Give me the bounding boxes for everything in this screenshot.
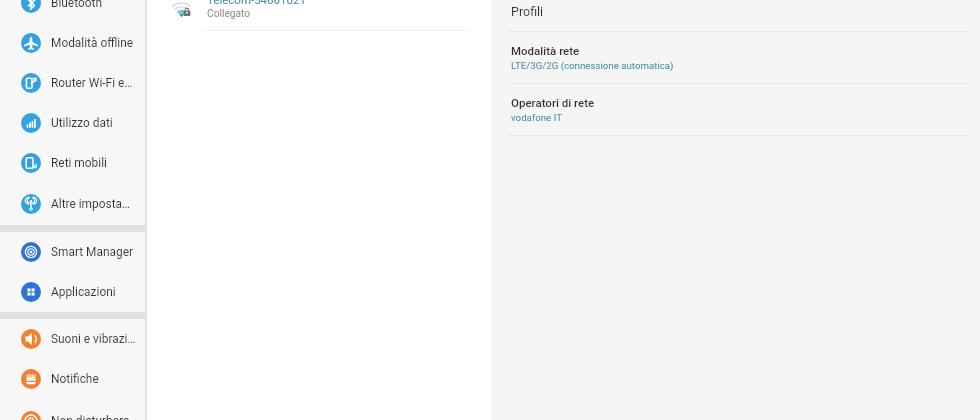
staticText: Profili (511, 4, 544, 19)
staticText: Notifiche (51, 372, 99, 386)
other: Wi-Fi secured network (174, 2, 191, 19)
button[interactable]: Altre imposta… (0, 184, 147, 224)
button[interactable]: Modalità rete (491, 32, 980, 83)
staticText: Applicazioni (51, 285, 116, 299)
button[interactable]: Reti mobili (0, 143, 147, 183)
button[interactable]: Operatori di rete (491, 84, 980, 135)
staticText: LTE/3G/2G (connessione automatica) (511, 60, 674, 71)
staticText: Operatori di rete (511, 96, 595, 109)
button[interactable]: Non disturbare (0, 401, 147, 420)
button[interactable]: Smart Manager (0, 232, 147, 272)
button[interactable]: Wi-Fi secured network (147, 0, 491, 19)
staticText: vodafone IT (511, 112, 562, 123)
staticText: Non disturbare (51, 414, 130, 420)
button[interactable]: Modalità offline (0, 23, 147, 63)
button[interactable]: Profili (491, 0, 980, 31)
staticText: Reti mobili (51, 156, 107, 170)
button[interactable]: Applicazioni (0, 272, 147, 312)
button[interactable]: Bluetooth (0, 0, 147, 23)
staticText: Router Wi-Fi e… (51, 76, 133, 90)
staticText: Suoni e vibrazi… (51, 332, 136, 346)
button[interactable]: Router Wi-Fi e… (0, 63, 147, 103)
staticText: Bluetooth (51, 0, 102, 10)
staticText: Smart Manager (51, 245, 134, 259)
staticText: Modalità rete (511, 44, 580, 57)
staticText: Modalità offline (51, 36, 134, 50)
staticText: Utilizzo dati (51, 116, 113, 130)
button[interactable]: Suoni e vibrazi… (0, 319, 147, 359)
staticText: Collegato (207, 8, 251, 20)
button[interactable]: Utilizzo dati (0, 103, 147, 143)
staticText: Telecom-54661021 (207, 0, 306, 6)
staticText: Altre imposta… (51, 197, 130, 211)
button[interactable]: Notifiche (0, 359, 147, 399)
